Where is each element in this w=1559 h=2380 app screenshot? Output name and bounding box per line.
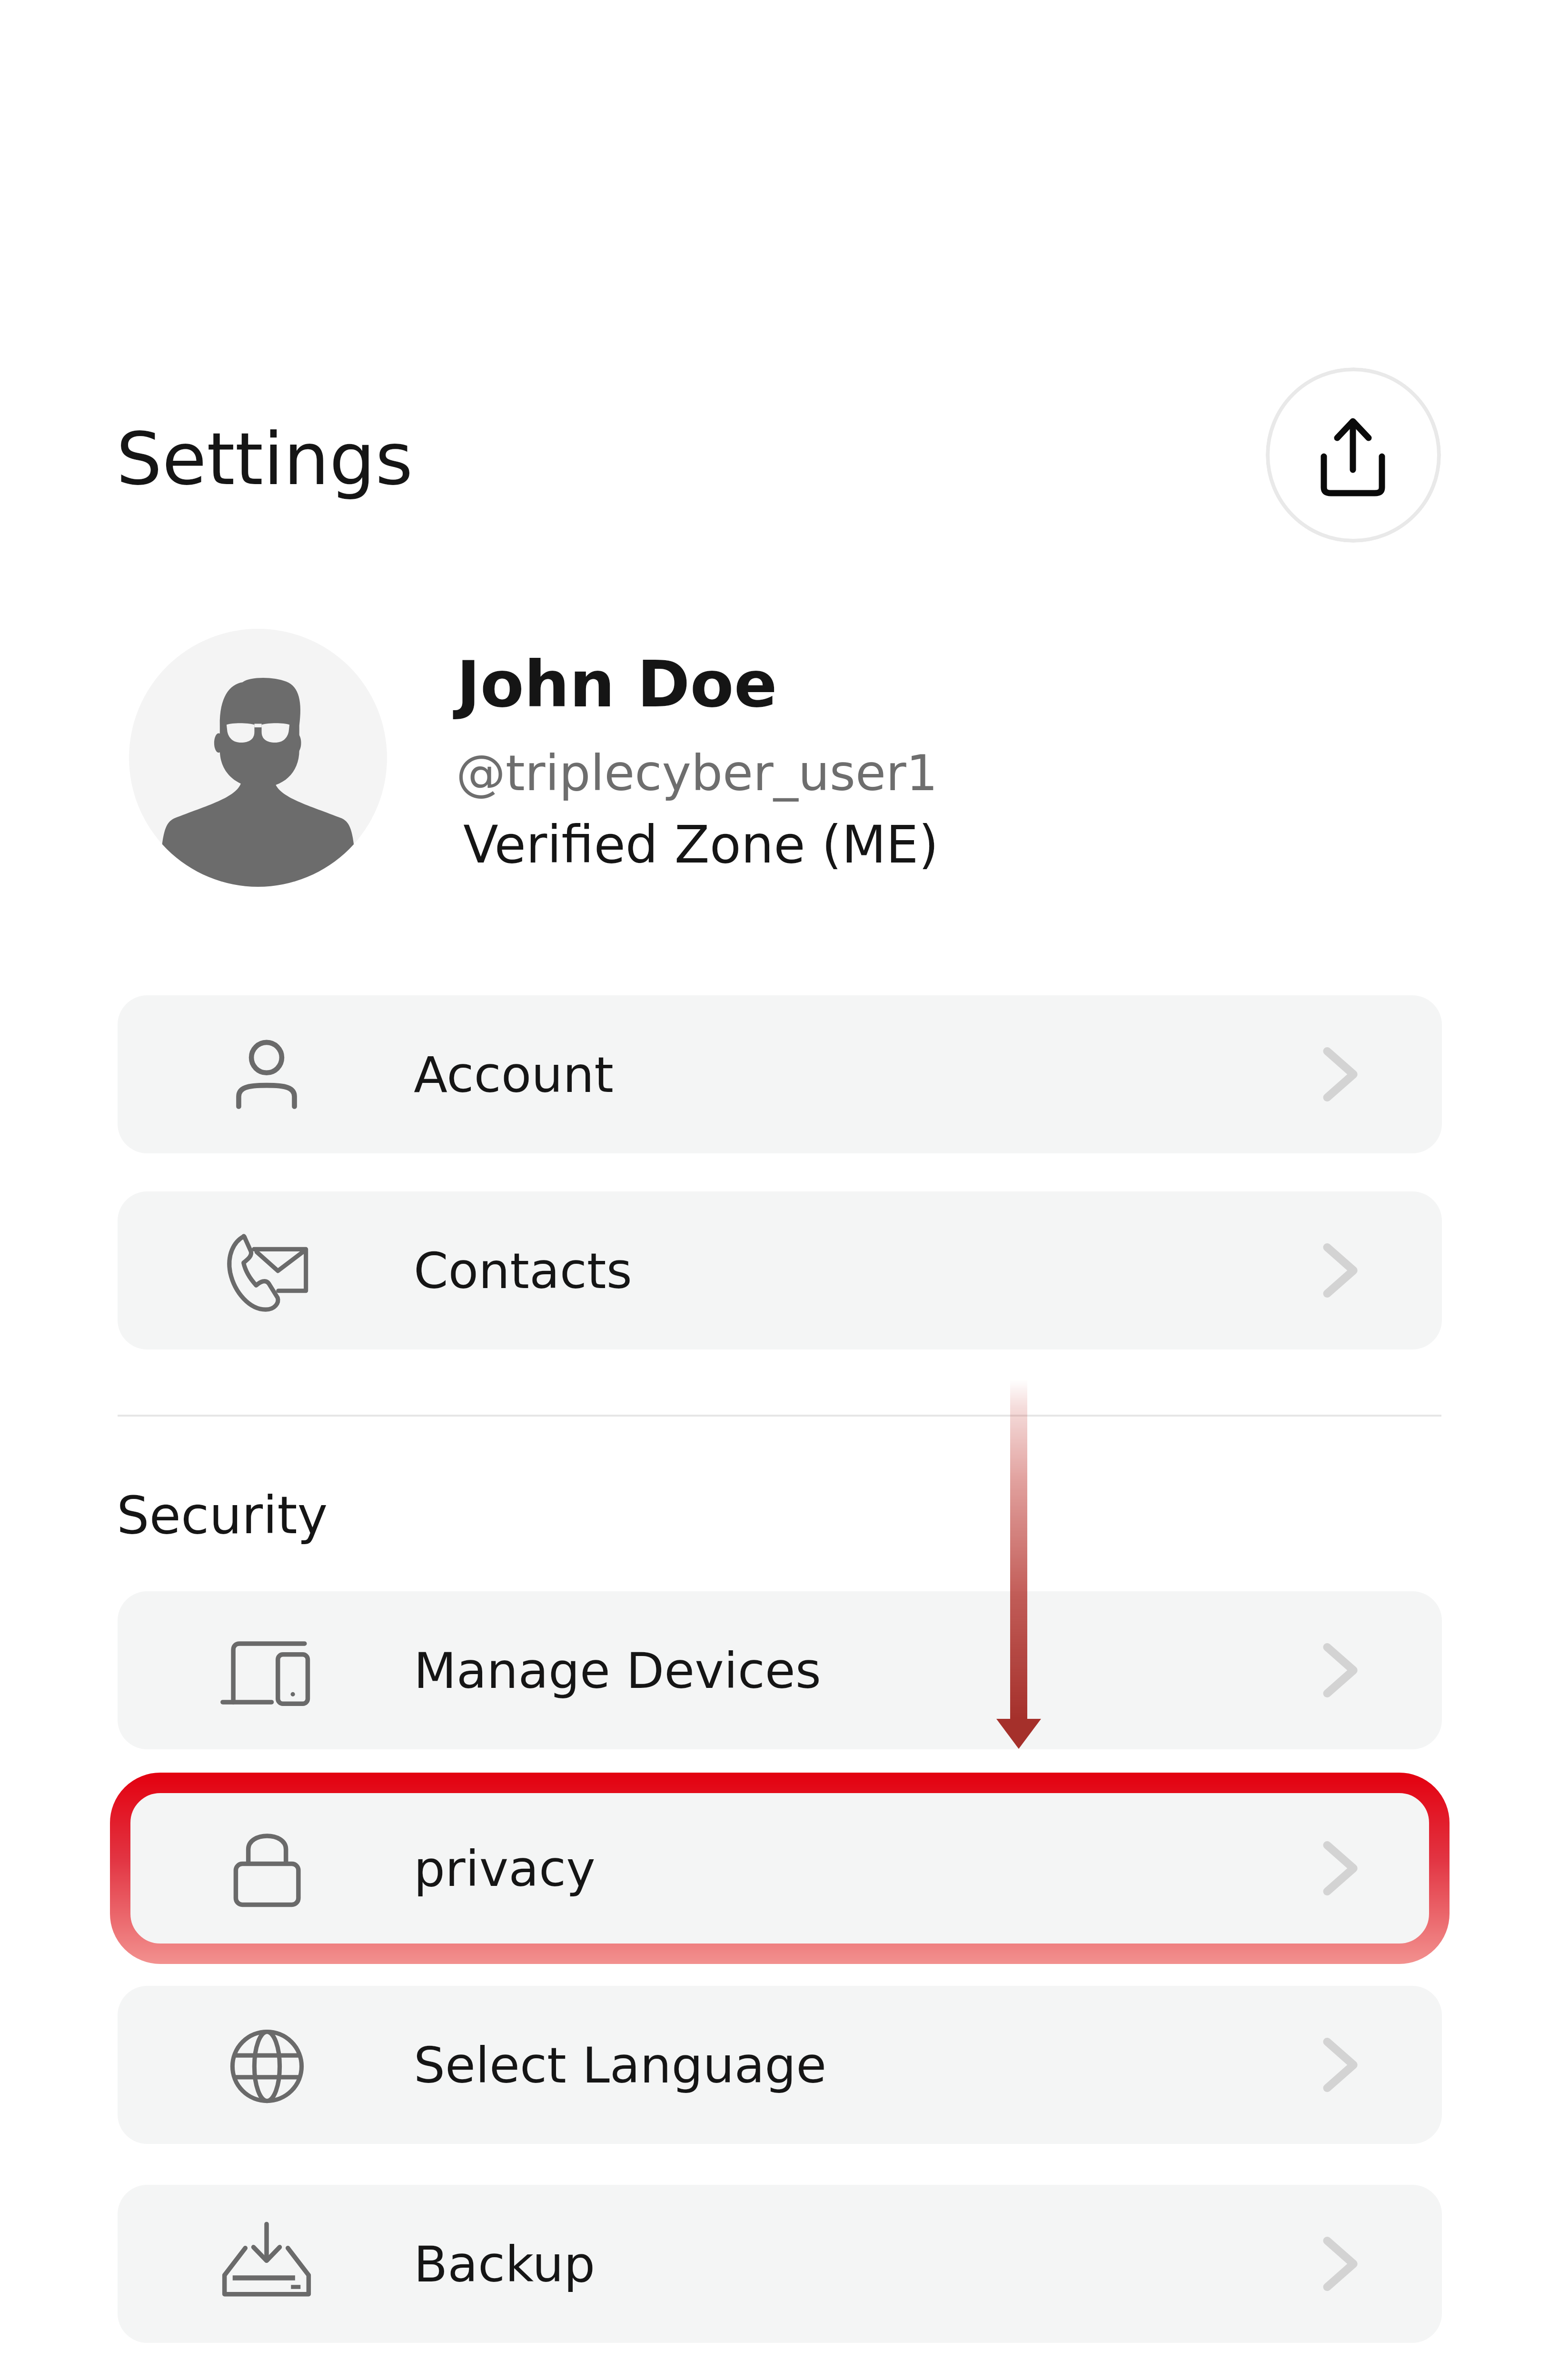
button[interactable]: Backup: [118, 2185, 1442, 2343]
staticText: Account: [414, 1046, 614, 1103]
button[interactable]: Share: [1266, 367, 1441, 543]
button[interactable]: Account: [118, 995, 1442, 1153]
button[interactable]: Manage Devices: [118, 1591, 1442, 1749]
staticText: Backup: [414, 2235, 596, 2293]
staticText: John Doe: [457, 647, 777, 722]
button[interactable]: privacy: [118, 1789, 1442, 1947]
staticText: Verified Zone (ME): [463, 815, 939, 875]
staticText: @triplecyber_user1: [456, 744, 938, 802]
button[interactable]: Contacts: [118, 1191, 1442, 1349]
staticText: Manage Devices: [414, 1642, 822, 1699]
staticText: Select Language: [414, 2036, 827, 2094]
button[interactable]: Select Language: [118, 1986, 1442, 2144]
staticText: Settings: [116, 417, 413, 501]
staticText: Security: [117, 1486, 328, 1546]
staticText: Contacts: [414, 1242, 632, 1299]
staticText: privacy: [414, 1840, 596, 1897]
